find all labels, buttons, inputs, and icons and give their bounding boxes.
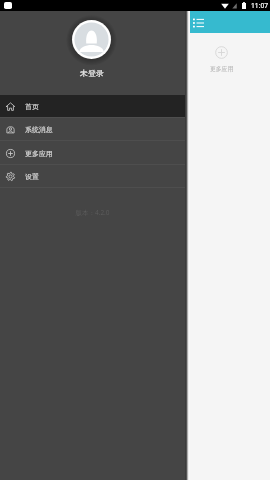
staticText: 11:07 [251, 1, 269, 10]
staticText: 更多应用 [25, 149, 53, 158]
button[interactable]: 更多应用 [199, 46, 244, 72]
staticText: 系统消息 [25, 125, 53, 134]
staticText: 设置 [25, 172, 39, 181]
staticText: 首页 [25, 102, 39, 111]
button[interactable]: 首页 [0, 95, 185, 118]
staticText: 未登录 [80, 68, 104, 78]
button[interactable]: 设置 [0, 165, 185, 188]
button[interactable]: 更多应用 [0, 141, 185, 165]
button[interactable]: Open navigation drawer [189, 13, 208, 32]
button[interactable]: 系统消息 [0, 118, 185, 141]
staticText: 更多应用 [210, 65, 234, 72]
button[interactable]: Account avatar [72, 20, 111, 59]
